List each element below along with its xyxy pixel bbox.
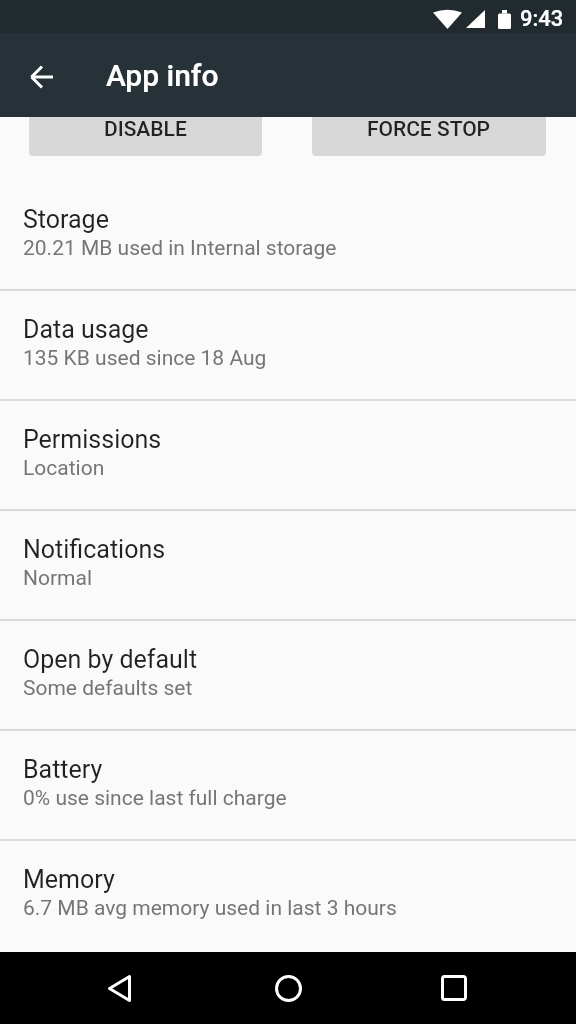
staticText: App info [106, 58, 219, 93]
button[interactable]: FORCE STOP [312, 117, 546, 156]
button[interactable]: Data usage [0, 291, 576, 399]
button[interactable]: Battery [0, 731, 576, 839]
button[interactable]: Memory [0, 841, 576, 951]
button[interactable]: Open by default [0, 621, 576, 729]
staticText: Some defaults set [23, 676, 193, 701]
staticText: 0% use since last full charge [23, 786, 287, 811]
staticText: 6.7 MB avg memory used in last 3 hours [23, 896, 397, 921]
staticText: 135 KB used since 18 Aug [23, 346, 267, 371]
button[interactable] [430, 964, 478, 1012]
staticText: Memory [23, 865, 115, 894]
staticText: Permissions [23, 425, 162, 454]
staticText: Battery [23, 755, 103, 784]
button[interactable]: Storage [0, 181, 576, 289]
button[interactable] [95, 964, 143, 1012]
staticText: Data usage [23, 315, 149, 344]
staticText: 20.21 MB used in Internal storage [23, 236, 337, 261]
staticText: Open by default [23, 645, 198, 674]
staticText: Normal [23, 566, 93, 591]
staticText: Storage [23, 205, 109, 234]
button[interactable]: Permissions [0, 401, 576, 509]
staticText: FORCE STOP [367, 117, 491, 142]
staticText: Notifications [23, 535, 166, 564]
button[interactable]: Notifications [0, 511, 576, 619]
button[interactable] [19, 52, 65, 98]
staticText: Location [23, 456, 105, 481]
staticText: DISABLE [104, 117, 187, 142]
button[interactable] [264, 964, 312, 1012]
button[interactable]: DISABLE [29, 117, 262, 156]
staticText: 9:43 [520, 6, 564, 32]
